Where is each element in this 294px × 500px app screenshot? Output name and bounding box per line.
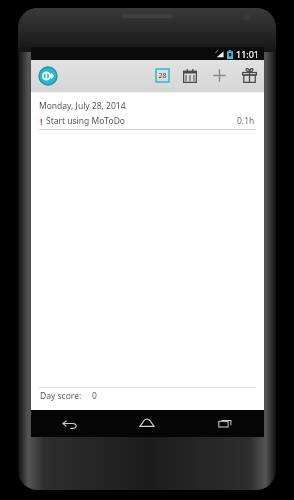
staticText: ! <box>40 115 43 127</box>
staticText: Monday, July 28, 2014 <box>39 100 126 112</box>
button[interactable]: Back <box>31 410 108 437</box>
button[interactable]: Add task <box>204 60 234 91</box>
button[interactable]: Calendar <box>176 60 204 91</box>
button[interactable]: ! <box>31 113 264 129</box>
button[interactable]: Recent apps <box>186 410 264 437</box>
button[interactable]: App home <box>37 65 59 87</box>
button[interactable]: Today <box>148 60 176 91</box>
staticText: Day score: <box>40 390 82 402</box>
button[interactable]: Rewards <box>234 60 264 91</box>
staticText: 28 <box>158 71 167 81</box>
staticText: 11:01 <box>236 48 260 60</box>
staticText: Start using MoToDo <box>46 115 125 127</box>
staticText: 0.1h <box>237 115 255 127</box>
button[interactable]: Home <box>108 410 186 437</box>
staticText: 0 <box>92 390 97 402</box>
